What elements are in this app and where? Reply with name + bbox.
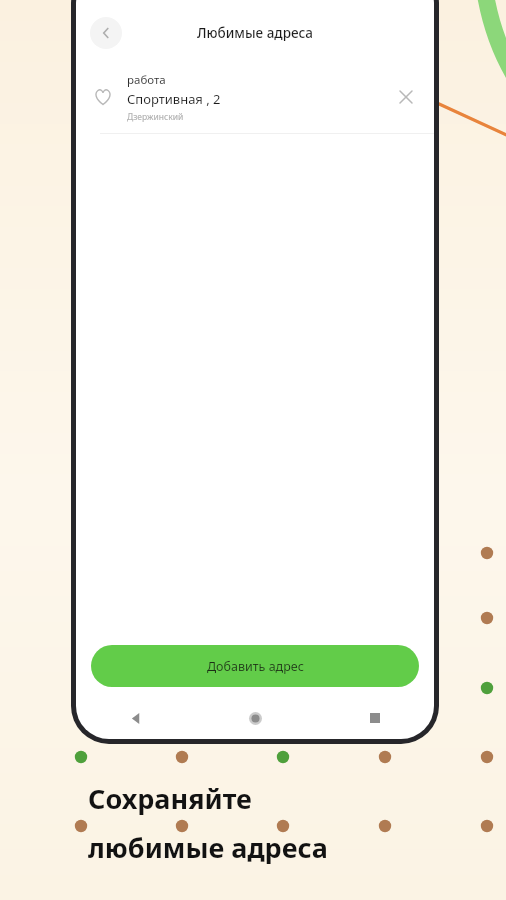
staticText: Дзержинский	[127, 111, 184, 123]
staticText: работа	[127, 72, 166, 88]
button[interactable]: Back	[76, 713, 196, 724]
button[interactable]: Удалить адрес	[392, 83, 420, 111]
button[interactable]: Home	[196, 712, 315, 725]
staticText: Любимые адреса	[197, 24, 313, 42]
button[interactable]: работа	[76, 61, 434, 133]
staticText: Добавить адрес	[207, 658, 304, 675]
staticText: любимые адреса	[88, 829, 328, 866]
staticText: Спортивная , 2	[127, 90, 221, 108]
button[interactable]: Recent apps	[315, 713, 434, 723]
button[interactable]: Назад	[90, 17, 122, 49]
staticText: Сохраняйте	[88, 780, 252, 817]
button[interactable]: Добавить адрес	[91, 645, 419, 687]
